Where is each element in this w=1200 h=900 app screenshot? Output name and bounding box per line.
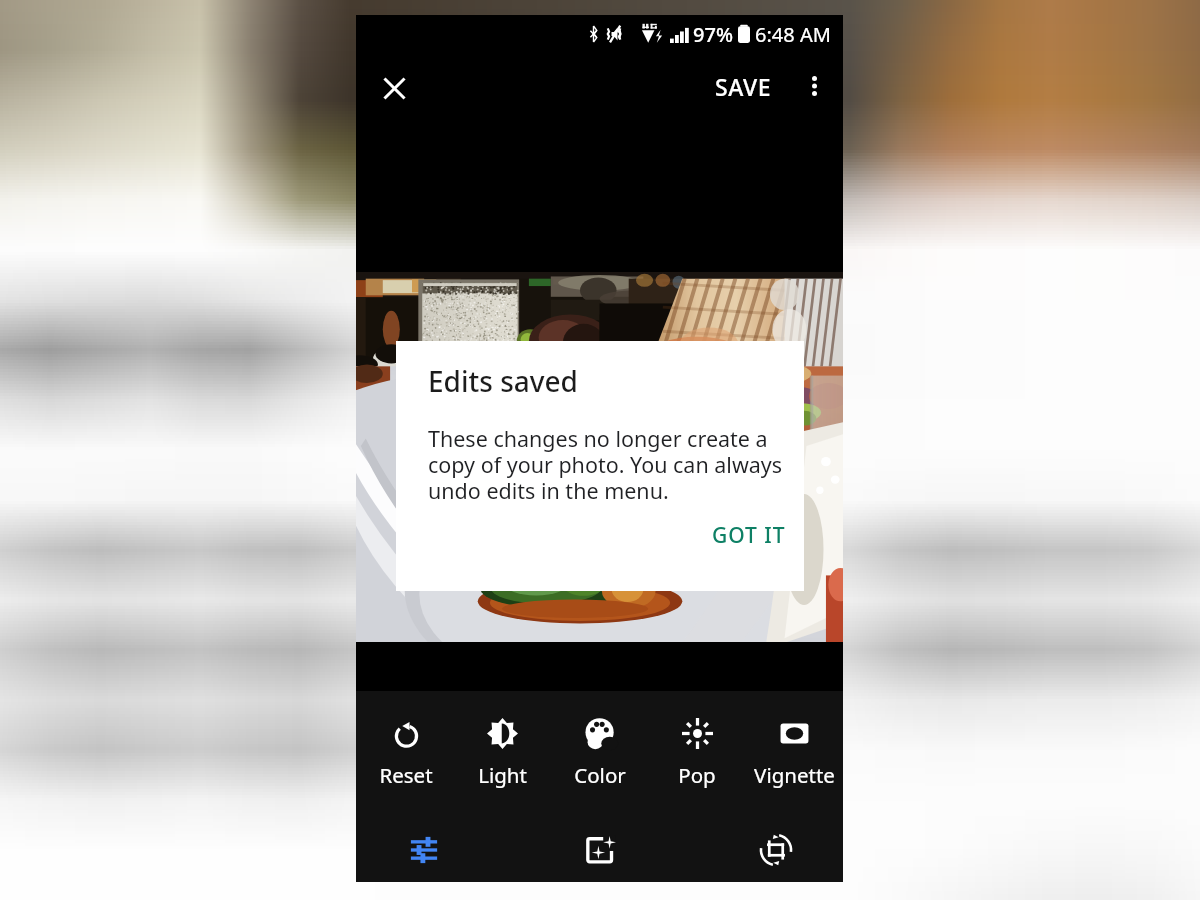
staticText: Light — [478, 761, 527, 789]
button[interactable]: Close — [372, 66, 416, 110]
button[interactable]: Crop — [750, 824, 802, 876]
staticText: 6:48 AM — [755, 21, 831, 48]
button[interactable]: More options — [794, 66, 834, 106]
staticText: Color — [574, 761, 626, 789]
button[interactable]: Filters — [574, 824, 626, 876]
staticText: Edits saved — [428, 362, 578, 400]
staticText: Reset — [379, 761, 433, 789]
staticText: GOT IT — [712, 521, 786, 550]
button[interactable]: Vignette — [750, 718, 838, 790]
button[interactable]: Reset — [362, 718, 450, 790]
button[interactable]: GOT IT — [696, 511, 802, 560]
staticText: These changes no longer create a copy of… — [428, 424, 783, 505]
button: Edits saved — [396, 341, 804, 591]
button[interactable]: Light — [458, 718, 546, 790]
button[interactable]: Pop — [653, 718, 741, 790]
staticText: 97% — [693, 21, 733, 48]
button[interactable]: Color — [556, 718, 644, 790]
staticText: Vignette — [754, 761, 835, 789]
button[interactable]: SAVE — [701, 61, 786, 112]
staticText: Pop — [678, 761, 716, 789]
button[interactable]: Adjust — [398, 824, 450, 876]
staticText: SAVE — [715, 71, 772, 102]
